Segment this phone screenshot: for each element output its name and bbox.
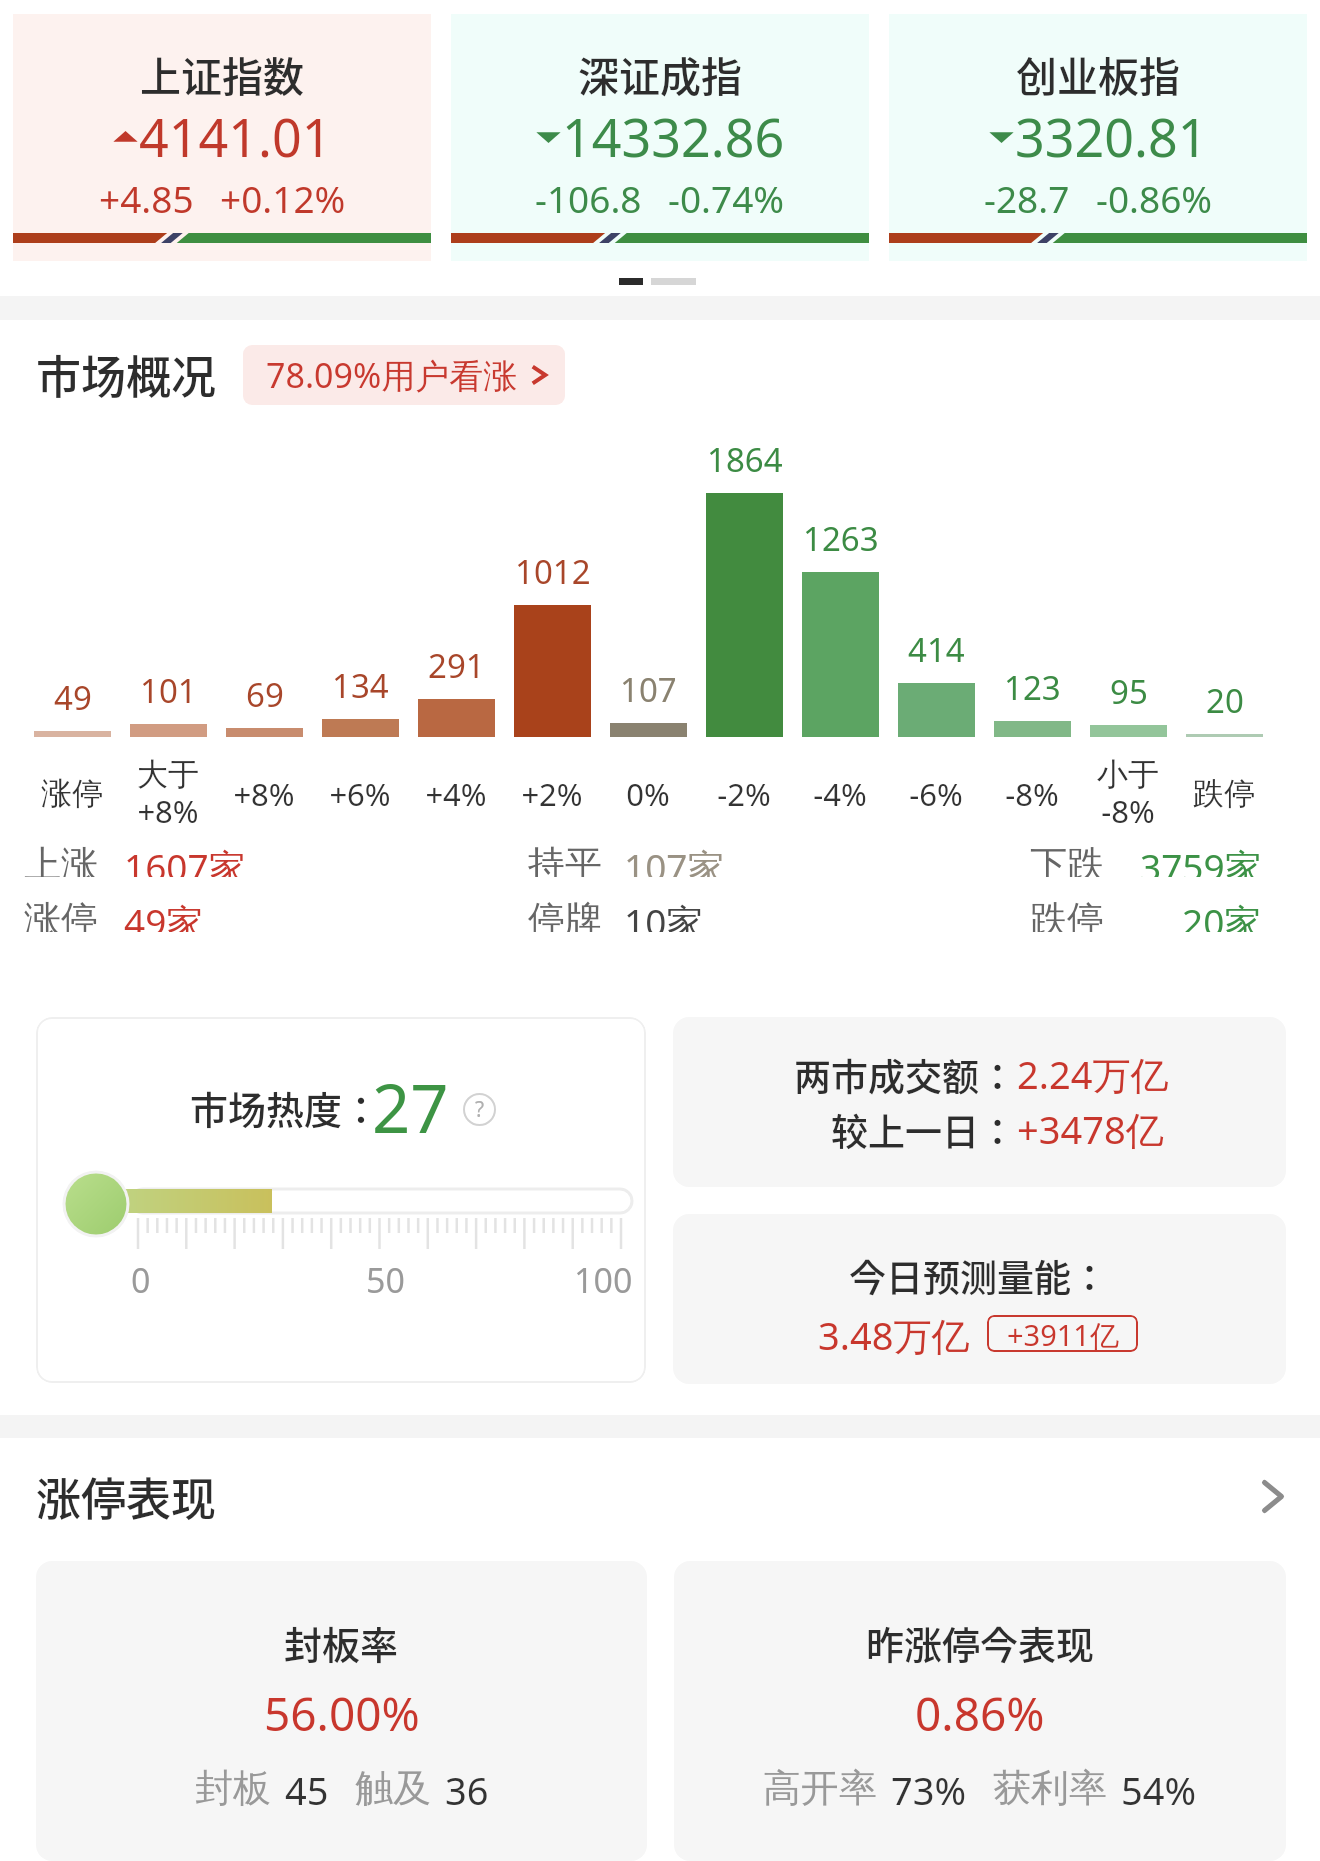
staticText: +8% — [233, 773, 295, 815]
staticText: 36 — [445, 1764, 489, 1816]
staticText: 较上一日： — [831, 1103, 1016, 1157]
staticText: 73% — [891, 1764, 967, 1816]
staticText: +2% — [521, 773, 583, 815]
staticText: +3911亿 — [1007, 1315, 1119, 1352]
staticText: 跌停 — [1193, 774, 1255, 813]
staticText: -106.8 — [535, 173, 642, 223]
staticText: 100 — [574, 1257, 633, 1303]
button[interactable]: 两市成交额： — [673, 1017, 1286, 1187]
staticText: -28.7 — [984, 173, 1070, 223]
staticText: +6% — [329, 773, 391, 815]
staticText: -2% — [717, 773, 771, 815]
button[interactable]: 封板率 — [36, 1561, 647, 1861]
staticText: 市场概况 — [36, 342, 217, 407]
staticText: 69 — [246, 672, 284, 717]
staticText: 封板率 — [284, 1615, 399, 1670]
staticText: 获利率 — [993, 1764, 1107, 1812]
staticText: 大于 +8% — [137, 755, 199, 832]
button[interactable]: 78.09%用户看涨 — [243, 345, 565, 405]
staticText: 291 — [428, 643, 485, 688]
staticText: 1012 — [515, 549, 591, 594]
button[interactable]: 涨停表现 — [0, 1464, 1320, 1529]
staticText: 持平 — [528, 841, 602, 877]
staticText: 20 — [1206, 678, 1244, 723]
button[interactable]: 上证指数 — [13, 14, 431, 261]
staticText: 2.24万亿 — [1017, 1048, 1169, 1100]
staticText: +4.85 — [99, 173, 194, 223]
staticText: -0.86% — [1096, 173, 1213, 223]
staticText: 涨停 — [24, 896, 98, 932]
staticText: 1607家 — [124, 841, 246, 877]
staticText: 50 — [366, 1257, 405, 1303]
staticText: 3320.81 — [1015, 101, 1208, 172]
staticText: +4% — [425, 773, 487, 815]
staticText: 78.09%用户看涨 — [266, 352, 518, 398]
staticText: 1864 — [707, 437, 783, 482]
staticText: 上证指数 — [140, 44, 304, 103]
staticText: -4% — [813, 773, 867, 815]
staticText: ? — [475, 1095, 485, 1124]
staticText: 3.48万亿 — [818, 1309, 970, 1361]
staticText: 小于 -8% — [1097, 755, 1159, 832]
staticText: 涨停 — [41, 774, 103, 813]
staticText: 27 — [372, 1061, 449, 1152]
staticText: 4141.01 — [139, 101, 332, 172]
staticText: 涨停表现 — [36, 1464, 217, 1529]
button[interactable]: 深证成指 — [451, 14, 869, 261]
other: 查看更多 — [1262, 1480, 1284, 1513]
staticText: 56.00% — [264, 1682, 420, 1745]
staticText: 20家 — [1182, 896, 1262, 932]
staticText: 10家 — [624, 896, 704, 932]
staticText: -8% — [1005, 773, 1059, 815]
staticText: 49 — [54, 675, 92, 720]
button[interactable]: 市场热度： — [36, 1017, 646, 1383]
staticText: 107家 — [624, 841, 725, 877]
staticText: -0.74% — [668, 173, 785, 223]
button[interactable]: 昨涨停今表现 — [674, 1561, 1286, 1861]
staticText: 市场热度： — [190, 1080, 381, 1135]
staticText: 1263 — [803, 516, 879, 561]
staticText: -6% — [909, 773, 963, 815]
staticText: 54% — [1121, 1764, 1197, 1816]
staticText: 0% — [626, 773, 670, 815]
staticText: 创业板指 — [1016, 44, 1180, 103]
staticText: 0 — [131, 1257, 151, 1303]
staticText: +0.12% — [220, 173, 346, 223]
staticText: 107 — [620, 667, 677, 712]
staticText: 今日预测量能： — [849, 1249, 1108, 1303]
button[interactable]: 创业板指 — [889, 14, 1307, 261]
staticText: 昨涨停今表现 — [866, 1615, 1095, 1670]
button[interactable]: 今日预测量能： — [673, 1214, 1286, 1384]
staticText: 414 — [908, 627, 965, 672]
staticText: 101 — [140, 668, 197, 713]
staticText: 14332.86 — [562, 101, 785, 172]
staticText: +3478亿 — [1017, 1103, 1164, 1155]
staticText: 45 — [285, 1764, 329, 1816]
staticText: 跌停 — [1030, 896, 1104, 932]
staticText: 下跌 — [1030, 841, 1104, 877]
staticText: 停牌 — [528, 896, 602, 932]
staticText: 95 — [1110, 669, 1148, 714]
staticText: 高开率 — [763, 1764, 877, 1812]
staticText: 0.86% — [915, 1682, 1045, 1745]
staticText: 深证成指 — [578, 44, 742, 103]
staticText: 134 — [332, 663, 389, 708]
staticText: 两市成交额： — [794, 1048, 1016, 1102]
staticText: 3759家 — [1140, 841, 1262, 877]
staticText: 上涨 — [24, 841, 98, 877]
staticText: 123 — [1004, 665, 1061, 710]
staticText: 触及 — [355, 1764, 431, 1812]
staticText: 49家 — [124, 896, 204, 932]
staticText: 封板 — [195, 1764, 271, 1812]
